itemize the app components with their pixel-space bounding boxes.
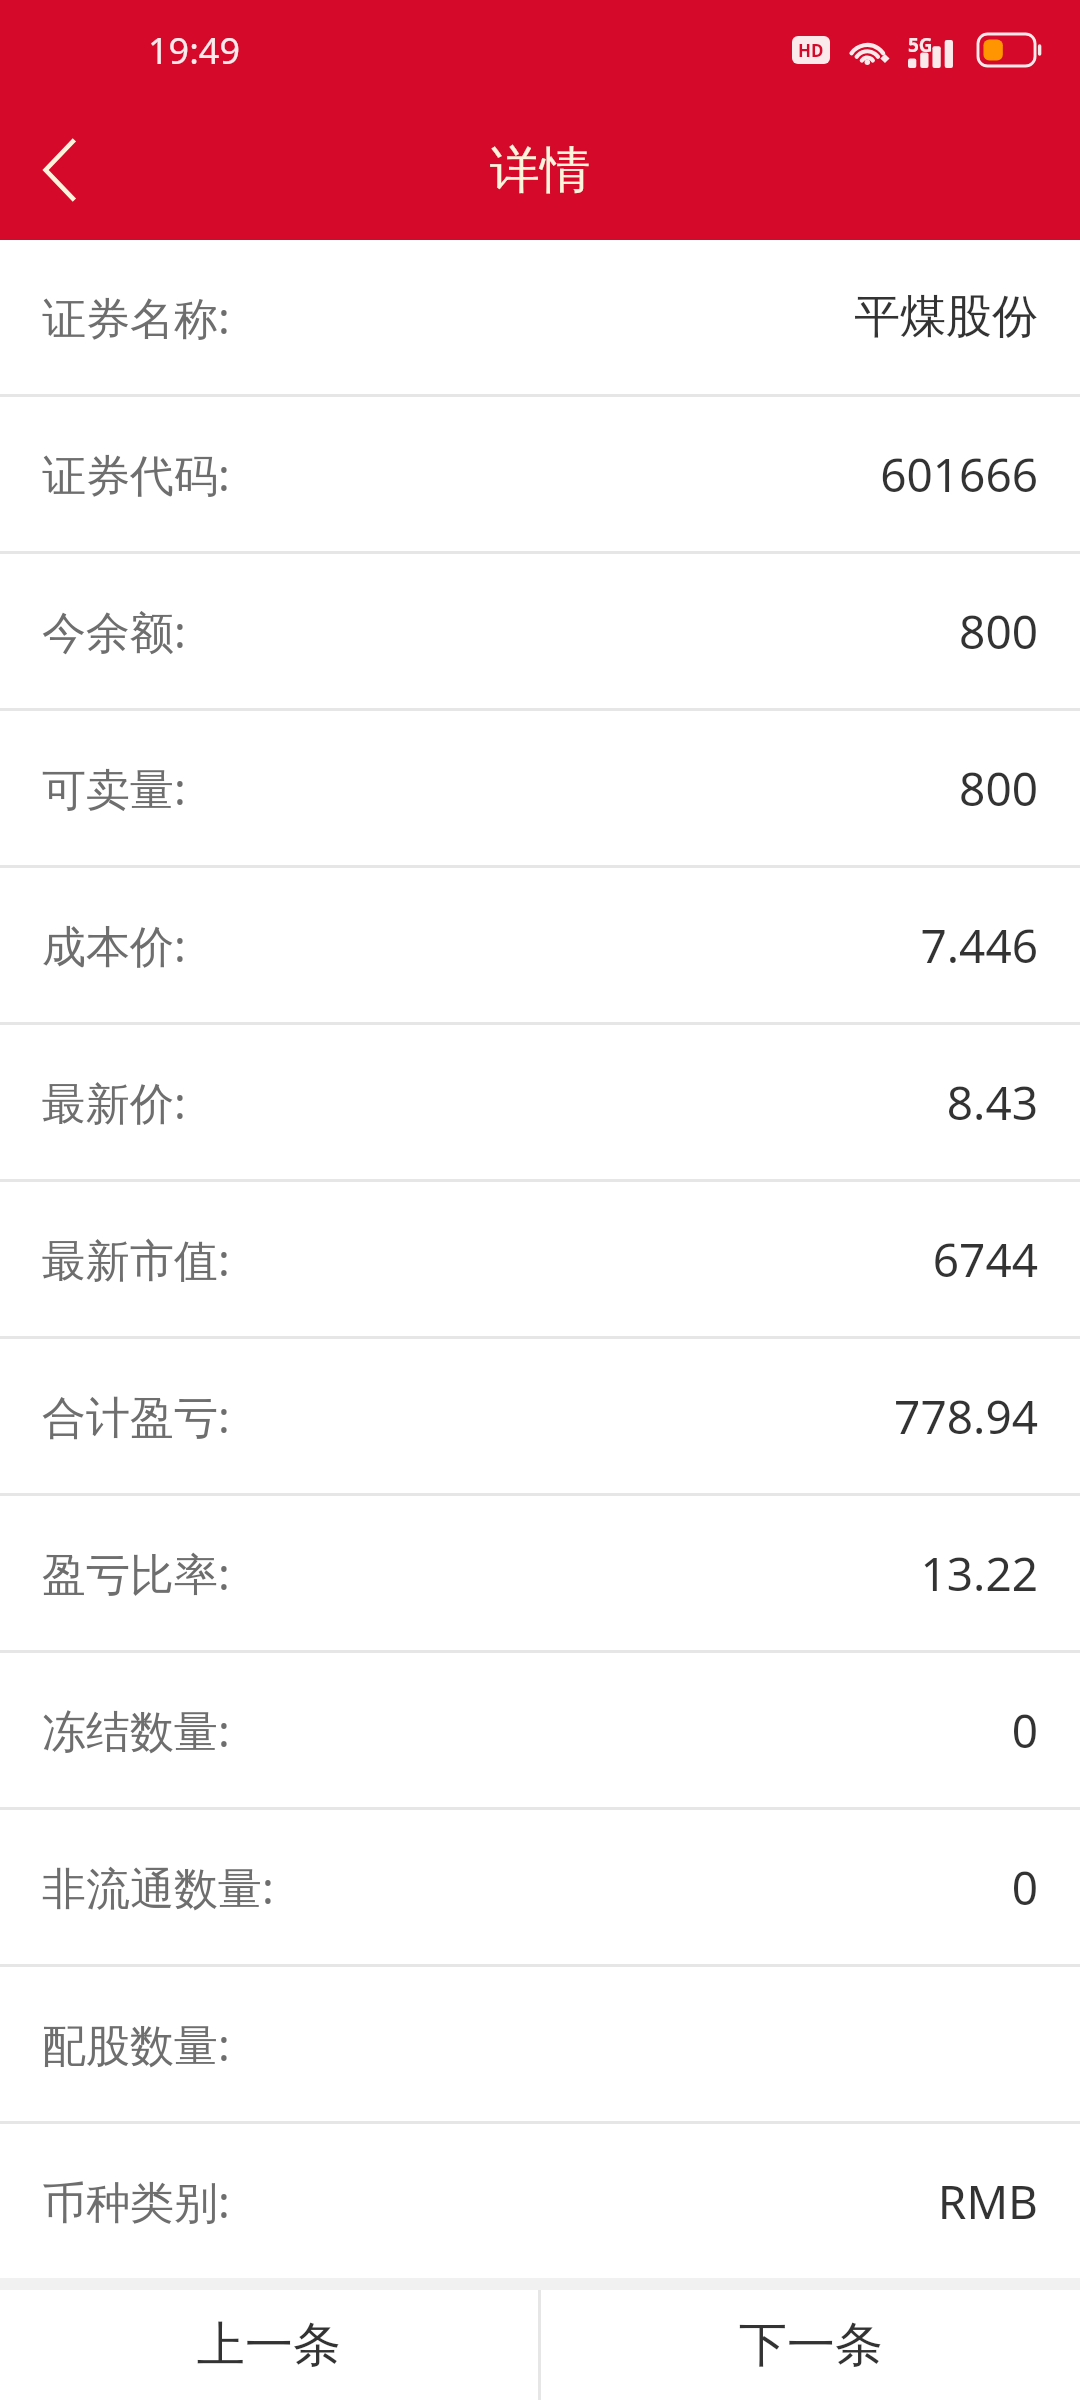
staticText: 详情: [490, 139, 590, 202]
button[interactable]: 证券代码:: [0, 397, 1080, 551]
staticText: 可卖量:: [42, 758, 186, 818]
staticText: 成本价:: [42, 915, 186, 975]
staticText: 冻结数量:: [42, 1700, 230, 1760]
button[interactable]: 成本价:: [0, 868, 1080, 1022]
staticText: 778.94: [894, 1385, 1038, 1448]
staticText: HD: [798, 39, 824, 62]
button[interactable]: 配股数量:: [0, 1967, 1080, 2121]
staticText: 601666: [880, 443, 1038, 506]
button[interactable]: 上一条: [0, 2290, 538, 2400]
button[interactable]: 冻结数量:: [0, 1653, 1080, 1807]
button[interactable]: 今余额:: [0, 554, 1080, 708]
button[interactable]: 合计盈亏:: [0, 1339, 1080, 1493]
staticText: 上一条: [197, 2315, 341, 2375]
button[interactable]: 下一条: [541, 2290, 1080, 2400]
staticText: 非流通数量:: [42, 1857, 274, 1917]
staticText: 800: [959, 757, 1038, 820]
staticText: 13.22: [920, 1542, 1038, 1605]
staticText: 最新市值:: [42, 1229, 230, 1289]
staticText: 6744: [932, 1228, 1038, 1291]
staticText: 0: [1011, 1856, 1038, 1919]
staticText: 7.446: [920, 914, 1038, 977]
staticText: 证券代码:: [42, 444, 230, 504]
staticText: 平煤股份: [854, 288, 1038, 346]
staticText: 5G: [908, 32, 933, 58]
staticText: 证券名称:: [42, 287, 230, 347]
staticText: 0: [1011, 1699, 1038, 1762]
staticText: 下一条: [739, 2315, 883, 2375]
button[interactable]: 可卖量:: [0, 711, 1080, 865]
staticText: 19:49: [148, 26, 241, 75]
staticText: RMB: [937, 2170, 1038, 2233]
staticText: 今余额:: [42, 601, 186, 661]
button[interactable]: 最新价:: [0, 1025, 1080, 1179]
button[interactable]: 最新市值:: [0, 1182, 1080, 1336]
button[interactable]: 盈亏比率:: [0, 1496, 1080, 1650]
button[interactable]: 币种类别:: [0, 2124, 1080, 2278]
staticText: 800: [959, 600, 1038, 663]
staticText: 8.43: [946, 1071, 1038, 1134]
button[interactable]: Back: [0, 100, 120, 240]
button[interactable]: 非流通数量:: [0, 1810, 1080, 1964]
staticText: 盈亏比率:: [42, 1543, 230, 1603]
staticText: 合计盈亏:: [42, 1386, 230, 1446]
staticText: 最新价:: [42, 1072, 186, 1132]
staticText: 币种类别:: [42, 2171, 230, 2231]
staticText: 配股数量:: [42, 2014, 230, 2074]
button[interactable]: 证券名称:: [0, 240, 1080, 394]
